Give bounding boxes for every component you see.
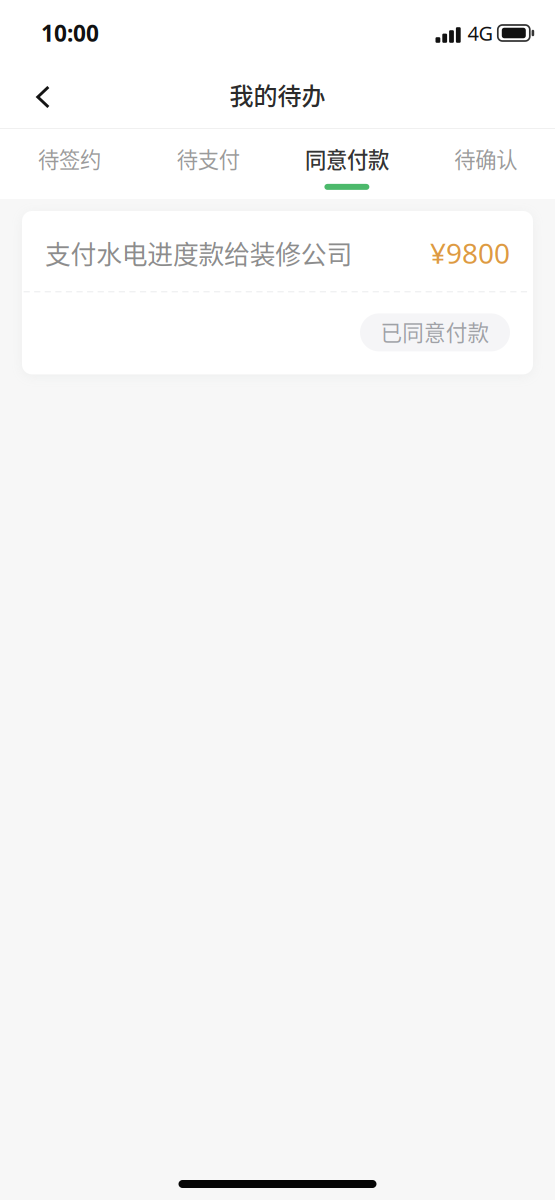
button[interactable]: 同意付款 bbox=[277, 129, 416, 199]
staticText: 同意付款 bbox=[305, 143, 389, 174]
staticText: 10:00 bbox=[41, 18, 99, 48]
button[interactable]: 已同意付款 bbox=[360, 313, 510, 351]
button[interactable]: 待确认 bbox=[416, 129, 555, 199]
staticText: 支付水电进度款给装修公司 bbox=[45, 234, 352, 272]
button[interactable]: 待支付 bbox=[139, 129, 278, 199]
button[interactable]: Back bbox=[0, 69, 75, 125]
staticText: 已同意付款 bbox=[381, 316, 489, 347]
staticText: ¥9800 bbox=[430, 234, 510, 272]
staticText: 待签约 bbox=[38, 143, 101, 174]
staticText: 待支付 bbox=[177, 143, 240, 174]
staticText: 我的待办 bbox=[229, 77, 325, 112]
staticText: 待确认 bbox=[454, 143, 517, 174]
button[interactable]: 待签约 bbox=[0, 129, 139, 199]
staticText: 4G bbox=[467, 20, 493, 46]
